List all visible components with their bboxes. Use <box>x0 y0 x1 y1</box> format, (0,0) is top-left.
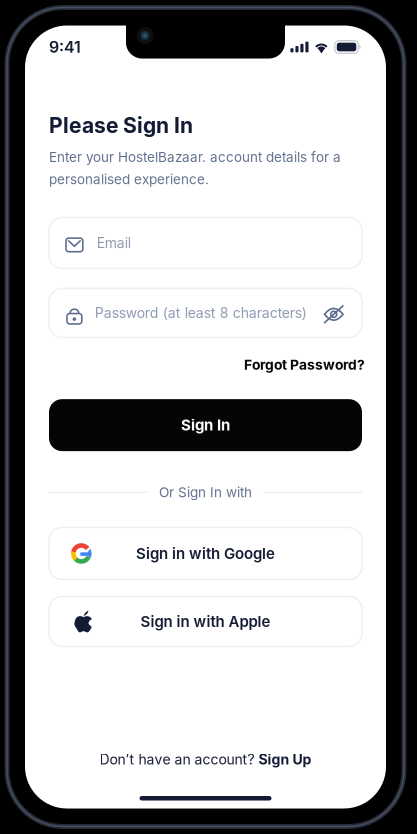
staticText: Sign in with Google <box>136 544 275 562</box>
staticText: 9:41 <box>49 37 81 57</box>
button[interactable]: Sign in with Google <box>49 527 362 579</box>
staticText: Don’t have an account? <box>99 751 258 768</box>
button[interactable]: Sign in with Apple <box>49 596 362 646</box>
staticText: Sign Up <box>258 751 311 768</box>
button[interactable]: Sign Up <box>258 751 311 768</box>
staticText: personalised experience. <box>49 171 209 187</box>
staticText: Forgot Password? <box>244 356 365 373</box>
staticText: Or Sign In with <box>159 484 252 500</box>
staticText: Sign in with Apple <box>140 612 270 630</box>
button[interactable]: Sign In <box>49 399 362 451</box>
staticText: Please Sign In <box>49 112 193 138</box>
staticText: Enter your HostelBazaar. account details… <box>49 149 341 165</box>
staticText: Email <box>97 234 131 251</box>
staticText: Sign In <box>181 416 230 434</box>
button[interactable]: Forgot Password? <box>244 356 365 373</box>
button[interactable]: Show password <box>323 304 344 322</box>
staticText: Password (at least 8 characters) <box>95 304 307 321</box>
